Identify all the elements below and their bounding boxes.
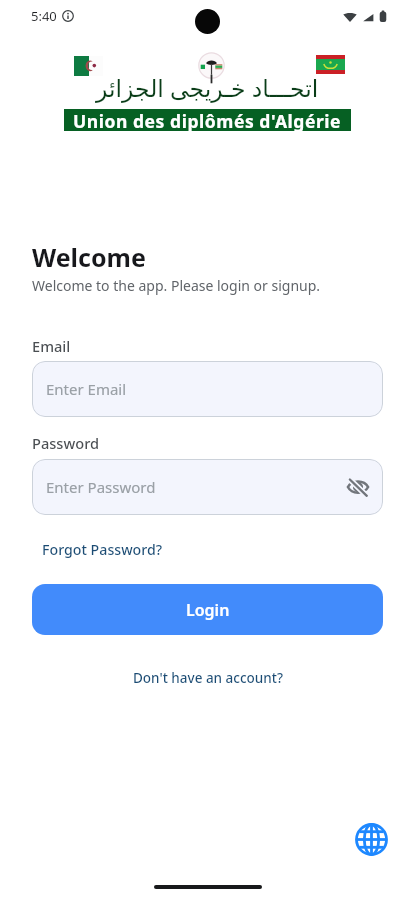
staticText: Enter Email — [46, 379, 127, 399]
button[interactable]: Forgot Password? — [36, 536, 169, 563]
button[interactable]: Login — [32, 584, 383, 635]
staticText: Password — [32, 433, 100, 453]
button[interactable]: Enter Password — [32, 459, 383, 515]
staticText: Union des diplômés d'Algérie — [73, 109, 342, 131]
staticText: Enter Password — [46, 477, 156, 497]
staticText: اتحـــاد خـريجى الجزائر — [96, 72, 319, 104]
staticText: Welcome — [32, 240, 146, 274]
button[interactable]: Enter Email — [32, 361, 383, 417]
button[interactable]: Change language — [349, 817, 393, 861]
button[interactable]: Don't have an account? — [125, 665, 291, 691]
staticText: Welcome to the app. Please login or sign… — [32, 276, 321, 295]
staticText: Don't have an account? — [133, 669, 283, 687]
button[interactable]: Show password — [347, 476, 369, 498]
staticText: Forgot Password? — [42, 540, 163, 559]
staticText: 5:40 — [31, 7, 57, 25]
staticText: Login — [186, 599, 230, 621]
staticText: Email — [32, 336, 71, 356]
